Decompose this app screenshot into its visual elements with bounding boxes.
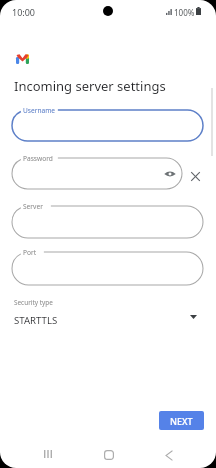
staticText: Port bbox=[23, 248, 37, 257]
staticText: NEXT bbox=[170, 415, 193, 427]
button[interactable]: Recent apps bbox=[36, 444, 60, 464]
button[interactable]: NEXT bbox=[159, 411, 204, 430]
staticText: Security type bbox=[14, 298, 53, 307]
staticText: Server bbox=[23, 202, 43, 211]
staticText: Username bbox=[23, 106, 56, 115]
button[interactable]: Server bbox=[12, 206, 203, 238]
button[interactable]: Username bbox=[12, 110, 203, 141]
staticText: Incoming server settings bbox=[14, 77, 166, 95]
staticText: Password bbox=[23, 154, 53, 163]
button[interactable]: Show password bbox=[164, 168, 176, 180]
staticText: 100% bbox=[174, 7, 195, 18]
staticText: 10:00 bbox=[12, 6, 36, 18]
button[interactable]: Port bbox=[12, 252, 203, 285]
button[interactable]: Home bbox=[97, 445, 121, 465]
button[interactable]: Password bbox=[12, 158, 182, 189]
button[interactable]: Clear password bbox=[190, 171, 201, 182]
button[interactable]: Security type bbox=[0, 296, 216, 328]
staticText: STARTTLS bbox=[14, 314, 58, 327]
button[interactable]: Back bbox=[157, 445, 181, 465]
